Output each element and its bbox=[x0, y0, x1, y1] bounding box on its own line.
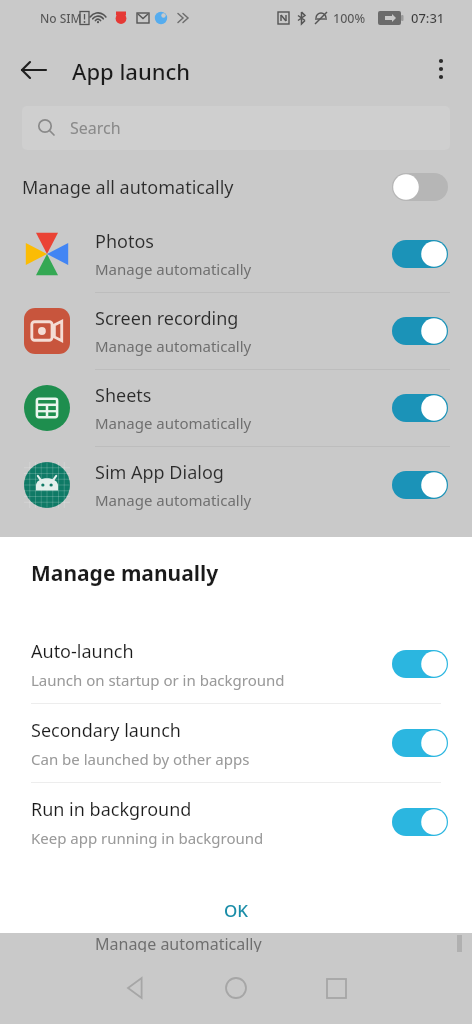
button[interactable] bbox=[392, 728, 450, 758]
staticText: Auto-launch bbox=[31, 639, 134, 664]
staticText: Search bbox=[70, 117, 121, 139]
staticText: 07:31 bbox=[411, 9, 445, 27]
staticText: Manage manually bbox=[31, 559, 219, 588]
staticText: Manage automatically bbox=[95, 933, 262, 955]
button[interactable]: Back bbox=[12, 48, 56, 92]
staticText: Screen recording bbox=[95, 306, 239, 331]
button[interactable]: Secondary launch bbox=[0, 704, 472, 782]
button[interactable]: Back bbox=[112, 964, 160, 1012]
staticText: Manage all automatically bbox=[22, 175, 234, 200]
button[interactable] bbox=[392, 649, 450, 679]
button[interactable]: Sim App Dialog bbox=[0, 447, 472, 523]
button[interactable] bbox=[392, 316, 450, 346]
staticText: Can be launched by other apps bbox=[31, 749, 250, 769]
staticText: App launch bbox=[72, 56, 191, 86]
button[interactable]: Screen recording bbox=[0, 293, 472, 369]
button[interactable] bbox=[392, 239, 450, 269]
staticText: No SIM bbox=[40, 10, 82, 26]
staticText: Manage automatically bbox=[95, 490, 252, 510]
button[interactable]: More options bbox=[420, 48, 462, 90]
staticText: 100% bbox=[333, 10, 366, 27]
staticText: Manage automatically bbox=[95, 336, 252, 356]
button[interactable] bbox=[392, 393, 450, 423]
button[interactable]: OK bbox=[0, 887, 472, 933]
button[interactable]: Search bbox=[22, 106, 450, 150]
button[interactable]: Run in background bbox=[0, 783, 472, 861]
staticText: Sheets bbox=[95, 383, 152, 408]
staticText: Secondary launch bbox=[31, 718, 181, 743]
staticText: OK bbox=[224, 899, 249, 922]
button[interactable] bbox=[392, 470, 450, 500]
staticText: Launch on startup or in background bbox=[31, 670, 285, 690]
button[interactable]: Sheets bbox=[0, 370, 472, 446]
staticText: Sim App Dialog bbox=[95, 460, 224, 485]
button[interactable]: Home bbox=[212, 964, 260, 1012]
staticText: Photos bbox=[95, 229, 154, 254]
button[interactable]: Manage all automatically bbox=[0, 158, 472, 216]
staticText: Manage automatically bbox=[95, 413, 252, 433]
button[interactable]: Photos bbox=[0, 216, 472, 292]
button[interactable] bbox=[392, 172, 450, 202]
button[interactable] bbox=[392, 807, 450, 837]
staticText: Manage automatically bbox=[95, 259, 252, 279]
staticText: Keep app running in background bbox=[31, 828, 264, 848]
staticText: Run in background bbox=[31, 797, 192, 822]
button[interactable]: Auto-launch bbox=[0, 625, 472, 703]
button[interactable]: Recent apps bbox=[312, 964, 360, 1012]
